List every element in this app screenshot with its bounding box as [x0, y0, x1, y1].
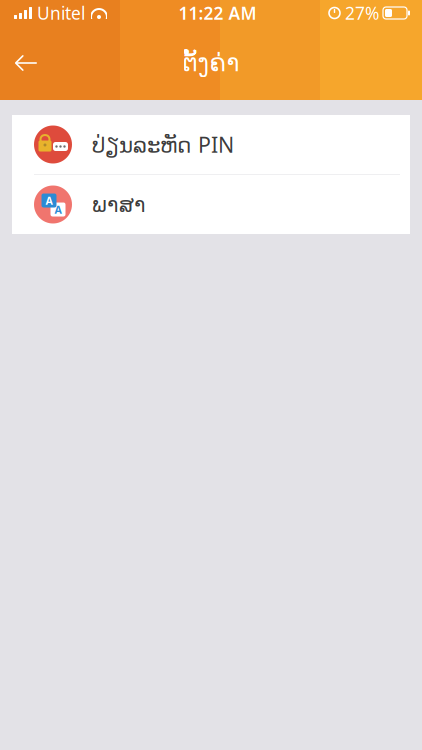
staticText: 27% [345, 1, 379, 24]
staticText: A [45, 193, 52, 208]
staticText: Unitel [37, 1, 85, 24]
button[interactable]: ປ່ຽນລະຫັດ PIN [12, 115, 410, 174]
button[interactable]: Back [4, 41, 48, 85]
button[interactable]: A [12, 175, 410, 234]
staticText: A [54, 202, 61, 217]
staticText: ປ່ຽນລະຫັດ PIN [92, 130, 234, 159]
staticText: 11:22 AM [178, 1, 256, 24]
staticText: ພາສາ [92, 192, 146, 217]
staticText: ຕັ້ງຄ່າ [182, 49, 239, 77]
